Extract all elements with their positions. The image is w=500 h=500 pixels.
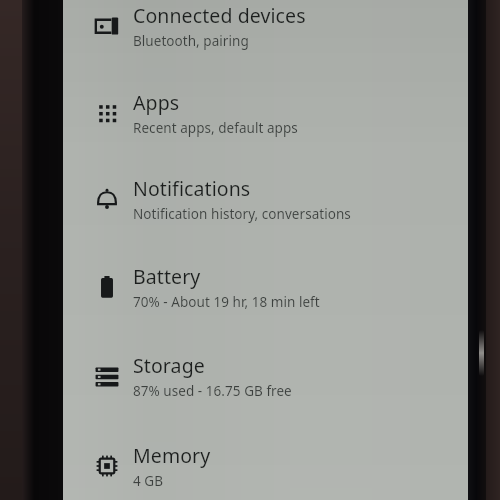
staticText: 87% used - 16.75 GB free xyxy=(133,382,292,400)
staticText: Bluetooth, pairing xyxy=(133,32,249,50)
button[interactable]: Memory xyxy=(63,433,468,500)
staticText: 4 GB xyxy=(133,472,164,490)
button[interactable]: Notifications xyxy=(63,166,468,242)
staticText: Notifications xyxy=(133,175,251,202)
button[interactable]: Connected devices xyxy=(63,0,468,69)
staticText: Notification history, conversations xyxy=(133,205,351,223)
button[interactable]: Battery xyxy=(63,254,468,330)
button[interactable]: Apps xyxy=(63,80,468,156)
staticText: Recent apps, default apps xyxy=(133,119,298,137)
staticText: 70% - About 19 hr, 18 min left xyxy=(133,293,320,311)
staticText: Apps xyxy=(133,89,180,116)
staticText: Storage xyxy=(133,352,205,379)
button[interactable]: Storage xyxy=(63,343,468,419)
staticText: Connected devices xyxy=(133,2,306,29)
staticText: Battery xyxy=(133,263,201,290)
staticText: Memory xyxy=(133,442,211,469)
